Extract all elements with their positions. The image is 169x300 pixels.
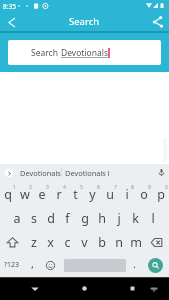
button[interactable]: h [93, 205, 110, 229]
staticText: h [98, 210, 106, 227]
staticText: 0 [165, 184, 168, 191]
button[interactable]: t [67, 181, 84, 205]
staticText: Search [69, 15, 100, 28]
button[interactable]: Hide keyboard [144, 277, 164, 300]
staticText: i [125, 186, 129, 203]
button[interactable]: k [127, 205, 144, 229]
staticText: 9 [148, 184, 151, 191]
staticText: o [140, 186, 148, 203]
staticText: f [65, 210, 70, 227]
button[interactable]: b [93, 229, 110, 253]
staticText: m [130, 234, 142, 251]
staticText: 3 [46, 184, 49, 191]
staticText: x [47, 234, 54, 251]
button[interactable]: Shift [0, 229, 25, 253]
staticText: w [20, 186, 30, 203]
staticText: e [38, 186, 46, 203]
staticText: 1 [13, 184, 16, 191]
button[interactable]: f [59, 205, 76, 229]
staticText: b [98, 234, 106, 251]
button[interactable]: y [84, 181, 101, 205]
staticText: n [115, 234, 123, 251]
staticText: t [73, 186, 78, 203]
button[interactable]: i [118, 181, 135, 205]
staticText: 4 [63, 184, 66, 191]
button[interactable]: c [59, 229, 76, 253]
staticText: 8:35 [3, 2, 16, 11]
button[interactable]: e [33, 181, 50, 205]
staticText: p [157, 186, 165, 203]
button[interactable]: Backspace [144, 229, 169, 253]
button[interactable]: , [23, 253, 41, 277]
staticText: k [132, 210, 139, 227]
button[interactable]: Emoji [41, 253, 60, 277]
button[interactable]: x [42, 229, 59, 253]
button[interactable]: Home [70, 277, 99, 300]
button[interactable]: r [50, 181, 67, 205]
staticText: d [47, 210, 55, 227]
button[interactable]: Voice input [153, 164, 169, 181]
button[interactable]: Search [8, 40, 161, 65]
staticText: y [89, 186, 96, 203]
button[interactable]: Back [0, 13, 23, 33]
staticText: ?123 [4, 260, 20, 270]
staticText: Devotionals [61, 47, 108, 59]
button[interactable]: u [101, 181, 118, 205]
staticText: Devotionals l [65, 168, 110, 178]
button[interactable]: p [152, 181, 169, 205]
staticText: v [81, 234, 88, 251]
button[interactable]: o [135, 181, 152, 205]
staticText: a [13, 210, 21, 227]
staticText: . [133, 256, 136, 271]
button[interactable]: d [42, 205, 59, 229]
button[interactable]: q [0, 181, 16, 205]
staticText: z [31, 234, 37, 251]
button[interactable]: m [127, 229, 144, 253]
button[interactable]: l [144, 205, 161, 229]
staticText: g [81, 210, 89, 227]
button[interactable]: s [25, 205, 42, 229]
staticText: Devotionals [20, 168, 61, 178]
button[interactable]: v [76, 229, 93, 253]
button[interactable]: n [110, 229, 127, 253]
button[interactable]: w [16, 181, 33, 205]
staticText: q [4, 186, 12, 203]
button[interactable]: a [8, 205, 25, 229]
button[interactable]: Back [21, 277, 49, 300]
staticText: r [56, 186, 62, 203]
staticText: 8 [131, 184, 134, 191]
staticText: c [64, 234, 71, 251]
button[interactable]: ?123 [0, 253, 23, 277]
staticText: Search [31, 47, 61, 59]
staticText: 5 [80, 184, 83, 191]
staticText: l [151, 210, 155, 227]
button[interactable]: g [76, 205, 93, 229]
button[interactable]: More suggestions [0, 164, 18, 181]
staticText: s [31, 210, 37, 227]
staticText: 7 [114, 184, 117, 191]
button[interactable]: Recents [118, 277, 146, 300]
button[interactable]: Search [141, 253, 169, 277]
button[interactable]: . [128, 253, 141, 277]
staticText: j [117, 210, 121, 227]
button[interactable]: z [25, 229, 42, 253]
staticText: , [31, 256, 34, 271]
staticText: 6 [97, 184, 100, 191]
staticText: u [106, 186, 114, 203]
staticText: 2 [29, 184, 32, 191]
button[interactable]: Share [146, 12, 169, 32]
button[interactable]: j [110, 205, 127, 229]
